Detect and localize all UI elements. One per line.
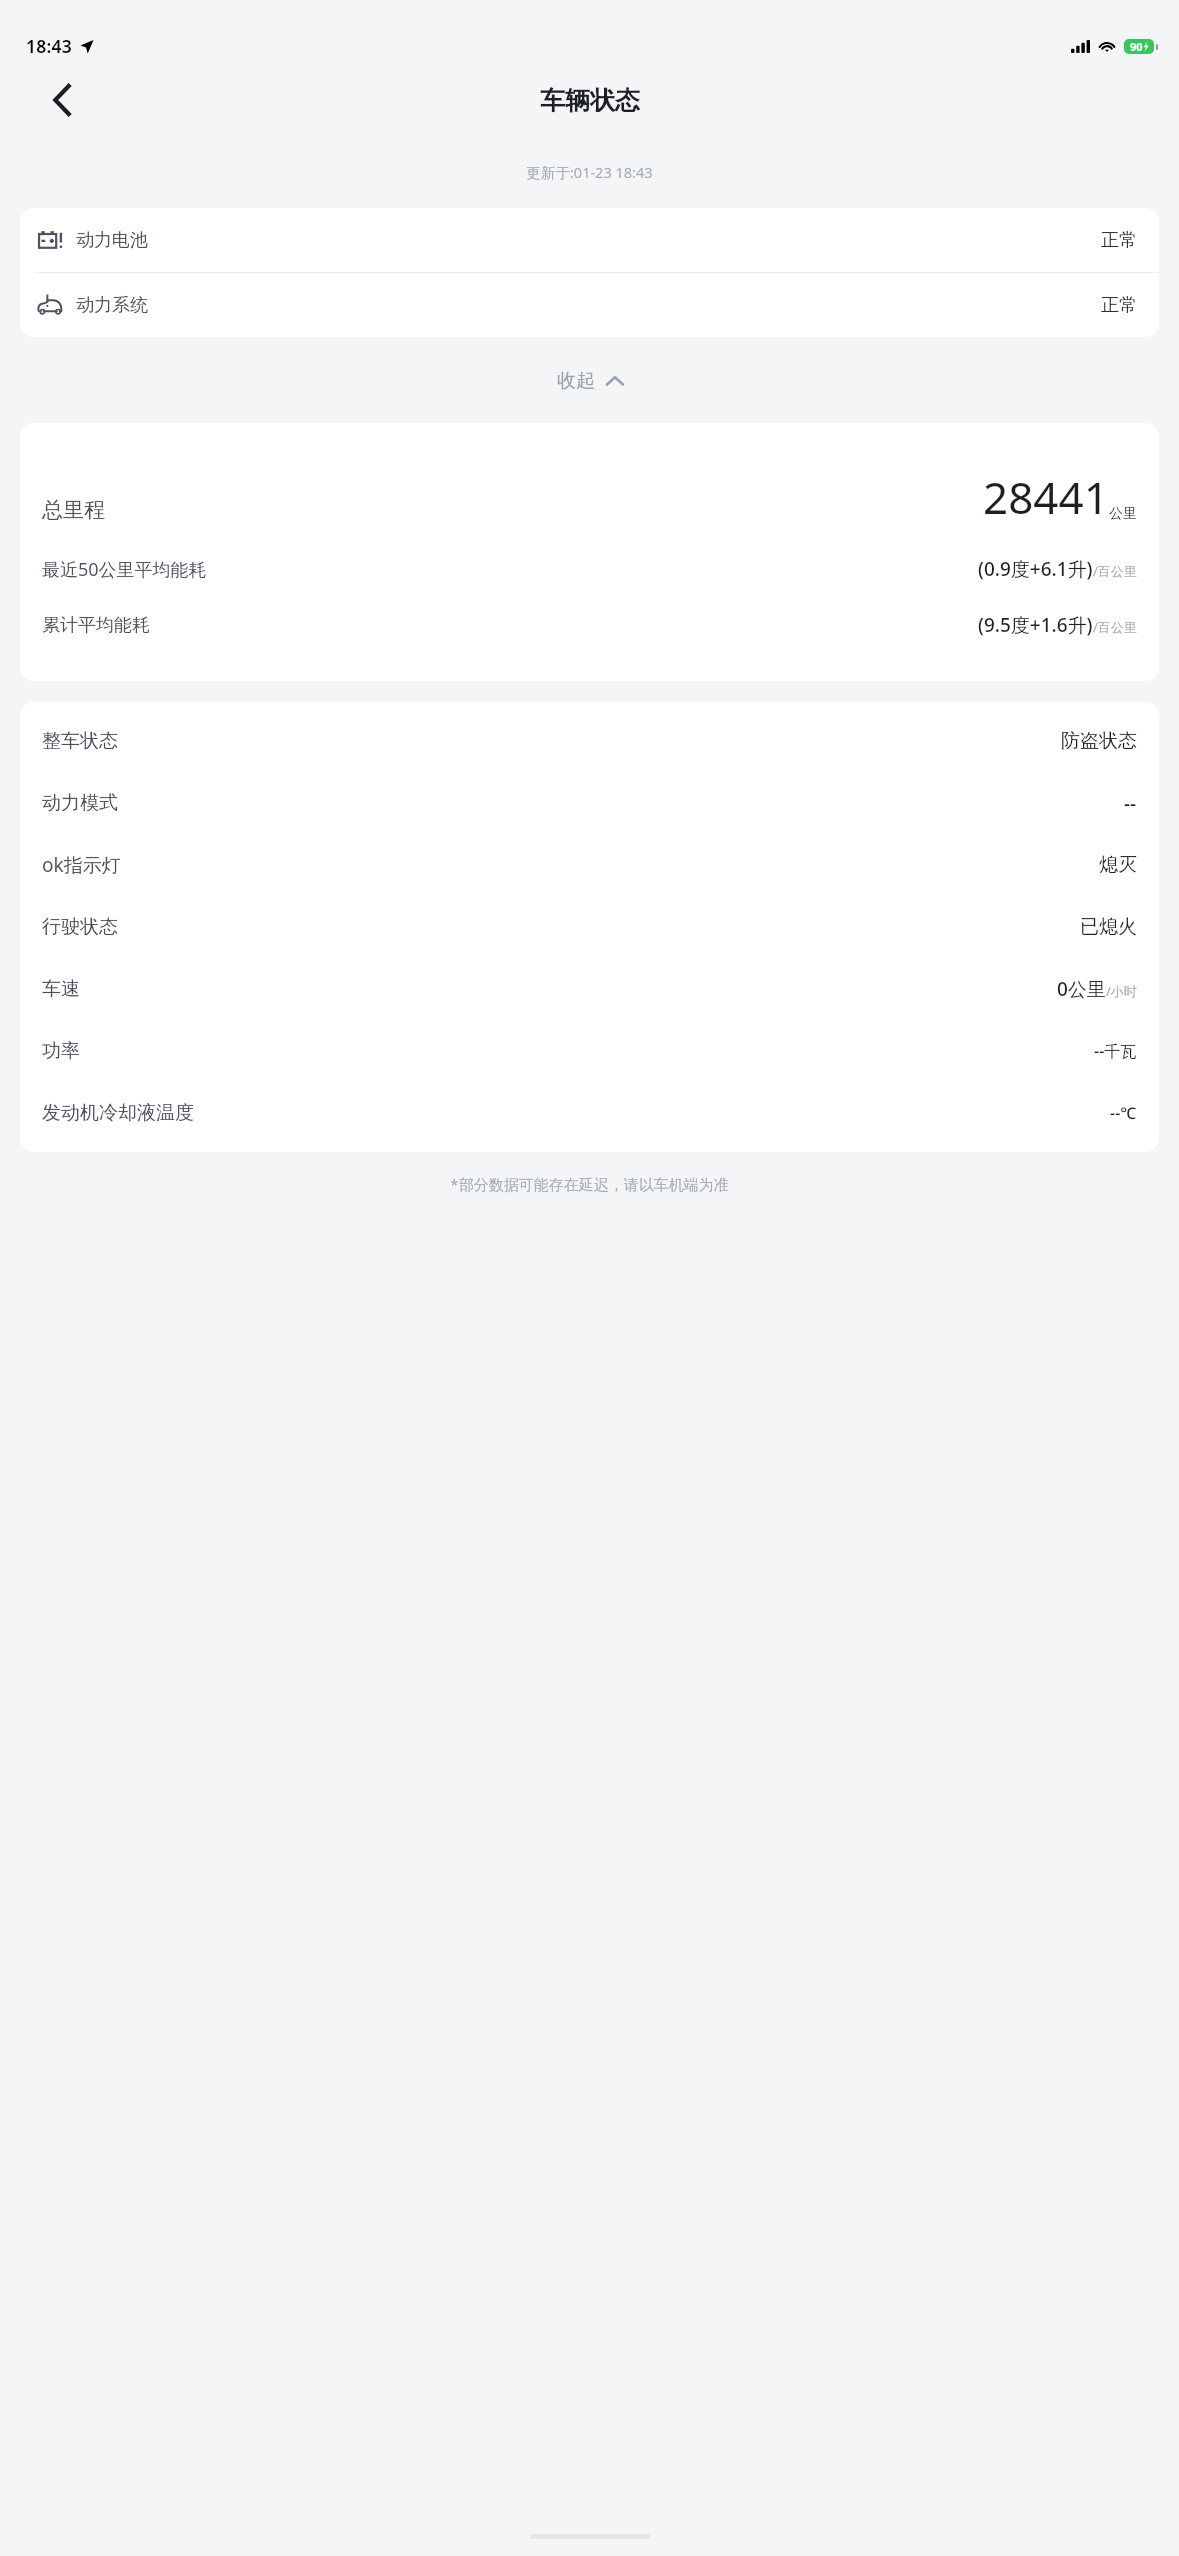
button[interactable]: 行驶状态: [20, 896, 1159, 958]
staticText: 更新于:01-23 18:43: [0, 162, 1179, 182]
staticText: 0公里: [1057, 976, 1106, 1002]
staticText: 动力电池: [76, 229, 148, 252]
button[interactable]: 整车状态: [20, 710, 1159, 772]
button[interactable]: 动力系统: [20, 273, 1159, 337]
staticText: 累计平均能耗: [42, 614, 150, 637]
button[interactable]: 动力模式: [20, 772, 1159, 834]
staticText: /小时: [1106, 982, 1137, 1000]
staticText: *部分数据可能存在延迟，请以车机端为准: [0, 1174, 1179, 1194]
staticText: /百公里: [1093, 618, 1137, 636]
staticText: 最近50公里平均能耗: [42, 557, 207, 582]
staticText: (0.9度+6.1升): [978, 556, 1093, 582]
staticText: 动力模式: [42, 791, 118, 815]
staticText: 公里: [1109, 505, 1137, 523]
staticText: 功率: [42, 1039, 80, 1063]
staticText: --千瓦: [1094, 1040, 1137, 1062]
staticText: 整车状态: [42, 729, 118, 753]
button[interactable]: 功率: [20, 1020, 1159, 1082]
button[interactable]: 车速: [20, 958, 1159, 1020]
staticText: 车辆状态: [540, 85, 640, 116]
button[interactable]: 动力电池: [20, 208, 1159, 272]
staticText: 已熄火: [1080, 915, 1137, 939]
staticText: 18:43: [26, 34, 72, 58]
staticText: 防盗状态: [1061, 729, 1137, 753]
button[interactable]: 收起: [0, 353, 1179, 409]
staticText: 正常: [1101, 294, 1137, 317]
staticText: /百公里: [1093, 562, 1137, 580]
staticText: (9.5度+1.6升): [978, 612, 1093, 638]
staticText: 动力系统: [76, 294, 148, 317]
button[interactable]: 发动机冷却液温度: [20, 1082, 1159, 1144]
staticText: 正常: [1101, 229, 1137, 252]
button[interactable]: 最近50公里平均能耗: [20, 551, 1159, 587]
button[interactable]: Back: [36, 74, 88, 126]
staticText: 收起: [557, 369, 595, 393]
staticText: ok指示灯: [42, 852, 121, 878]
button[interactable]: 累计平均能耗: [20, 607, 1159, 643]
staticText: 熄灭: [1099, 853, 1137, 877]
staticText: --: [1124, 790, 1137, 816]
staticText: 28441: [983, 467, 1109, 527]
staticText: 总里程: [42, 497, 105, 523]
staticText: 行驶状态: [42, 915, 118, 939]
staticText: 发动机冷却液温度: [42, 1101, 194, 1125]
button[interactable]: ok指示灯: [20, 834, 1159, 896]
staticText: 90: [1130, 39, 1143, 54]
staticText: 车速: [42, 977, 80, 1001]
staticText: --℃: [1110, 1102, 1137, 1124]
